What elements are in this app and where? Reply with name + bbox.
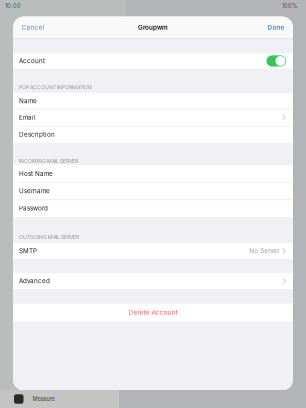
- button[interactable]: Delete Account: [13, 304, 293, 321]
- staticText: Advanced: [19, 277, 50, 285]
- button[interactable]: Done: [267, 24, 284, 31]
- staticText: Measure: [32, 396, 54, 402]
- button[interactable]: Account: [13, 53, 293, 69]
- staticText: Password: [19, 204, 48, 212]
- button[interactable]: Host Name: [13, 165, 293, 182]
- button[interactable]: Name: [13, 93, 293, 109]
- staticText: Username: [19, 187, 50, 195]
- staticText: Cancel: [21, 24, 44, 31]
- staticText: Name: [19, 97, 37, 105]
- button[interactable]: Password: [13, 200, 293, 217]
- staticText: OUTGOING MAIL SERVER: [19, 234, 79, 240]
- button[interactable]: SMTP: [13, 243, 293, 259]
- button[interactable]: Advanced: [13, 273, 293, 289]
- staticText: Email: [19, 114, 36, 121]
- staticText: Groupwm: [138, 24, 168, 31]
- staticText: Done: [267, 24, 284, 31]
- staticText: Delete Account: [128, 309, 177, 316]
- staticText: Description: [19, 131, 55, 138]
- staticText: SMTP: [19, 247, 37, 255]
- staticText: INCOMING MAIL SERVER: [19, 158, 78, 164]
- staticText: Host Name: [19, 170, 53, 177]
- button[interactable]: Username: [13, 182, 293, 200]
- button[interactable]: Description: [13, 126, 293, 143]
- button[interactable]: Cancel: [21, 24, 44, 31]
- staticText: Account: [19, 57, 45, 65]
- button[interactable]: Email: [13, 109, 293, 126]
- staticText: POP ACCOUNT INFORMATION: [19, 84, 92, 90]
- staticText: No Server: [249, 247, 279, 255]
- staticText: 10:00: [5, 3, 21, 9]
- staticText: 100%: [282, 3, 297, 9]
